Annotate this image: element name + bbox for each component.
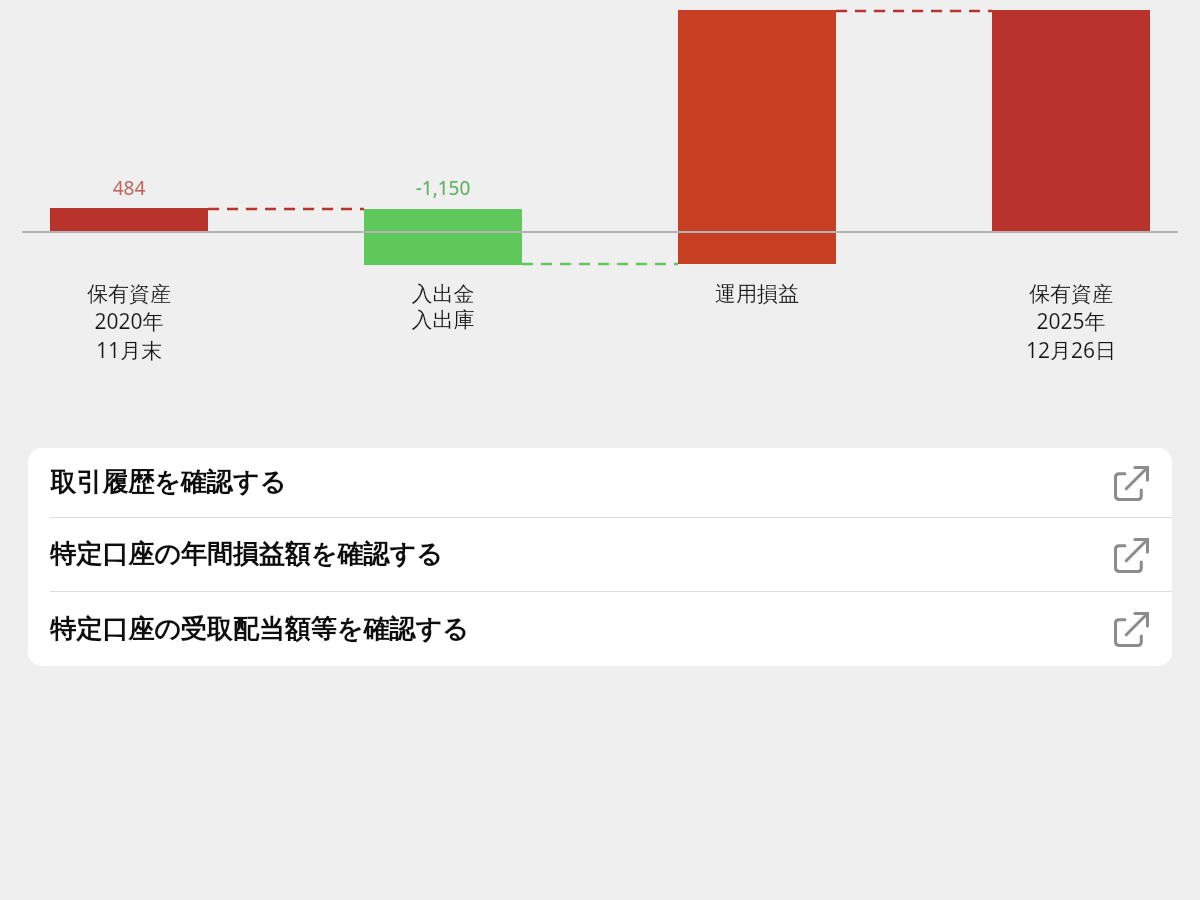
button[interactable]: 取引履歴を確認する [28,448,1172,517]
staticText: 2025年 [941,307,1200,336]
button[interactable]: 特定口座の受取配当額等を確認する [28,592,1172,666]
button[interactable]: 特定口座の年間損益額を確認する [28,518,1172,591]
staticText: 保有資産 [941,281,1200,307]
staticText: 保有資産 [0,281,259,307]
staticText: 11月末 [0,336,259,365]
staticText: -1,150 [343,175,543,201]
staticText: 484 [29,175,229,201]
other: 外部リンクを開く [1110,533,1154,577]
staticText: 運用損益 [627,281,887,307]
staticText: 2020年 [0,307,259,336]
staticText: 入出庫 [313,307,573,333]
staticText: 特定口座の受取配当額等を確認する [50,613,1110,646]
staticText: 取引履歴を確認する [50,466,1110,499]
staticText: 12月26日 [941,336,1200,365]
staticText: 入出金 [313,281,573,307]
other: 外部リンクを開く [1110,461,1154,505]
staticText: 特定口座の年間損益額を確認する [50,538,1110,571]
other: 外部リンクを開く [1110,607,1154,651]
